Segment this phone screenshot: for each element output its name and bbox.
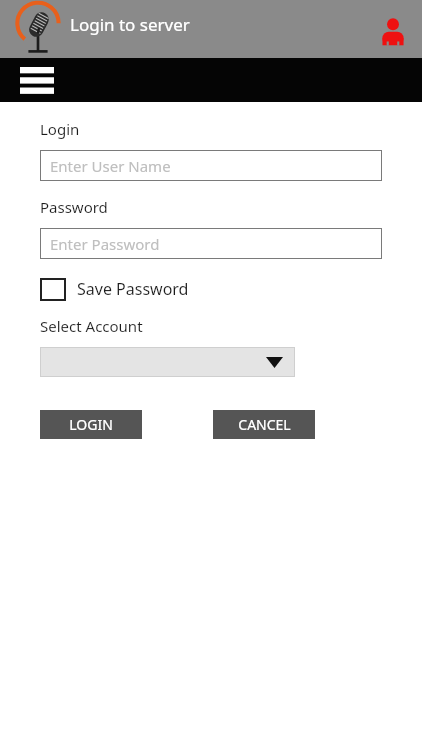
button[interactable]: Select Account dropdown <box>40 347 295 377</box>
staticText: Login to server <box>70 13 190 36</box>
staticText: Enter User Name <box>50 156 171 176</box>
staticText: Enter Password <box>50 234 160 254</box>
button[interactable]: CANCEL <box>213 410 315 439</box>
button[interactable]: Enter Password <box>40 228 382 259</box>
staticText: CANCEL <box>238 415 291 434</box>
staticText: Password <box>40 197 108 217</box>
button[interactable]: Account <box>376 14 410 48</box>
staticText: Login <box>40 119 80 139</box>
button[interactable]: LOGIN <box>40 410 142 439</box>
staticText: LOGIN <box>69 415 113 434</box>
other: App logo <box>14 1 62 57</box>
staticText: Select Account <box>40 316 143 336</box>
staticText: Save Password <box>77 278 189 300</box>
button[interactable]: Enter User Name <box>40 150 382 181</box>
button[interactable]: Menu <box>20 67 54 94</box>
button[interactable]: Save Password <box>40 276 189 302</box>
